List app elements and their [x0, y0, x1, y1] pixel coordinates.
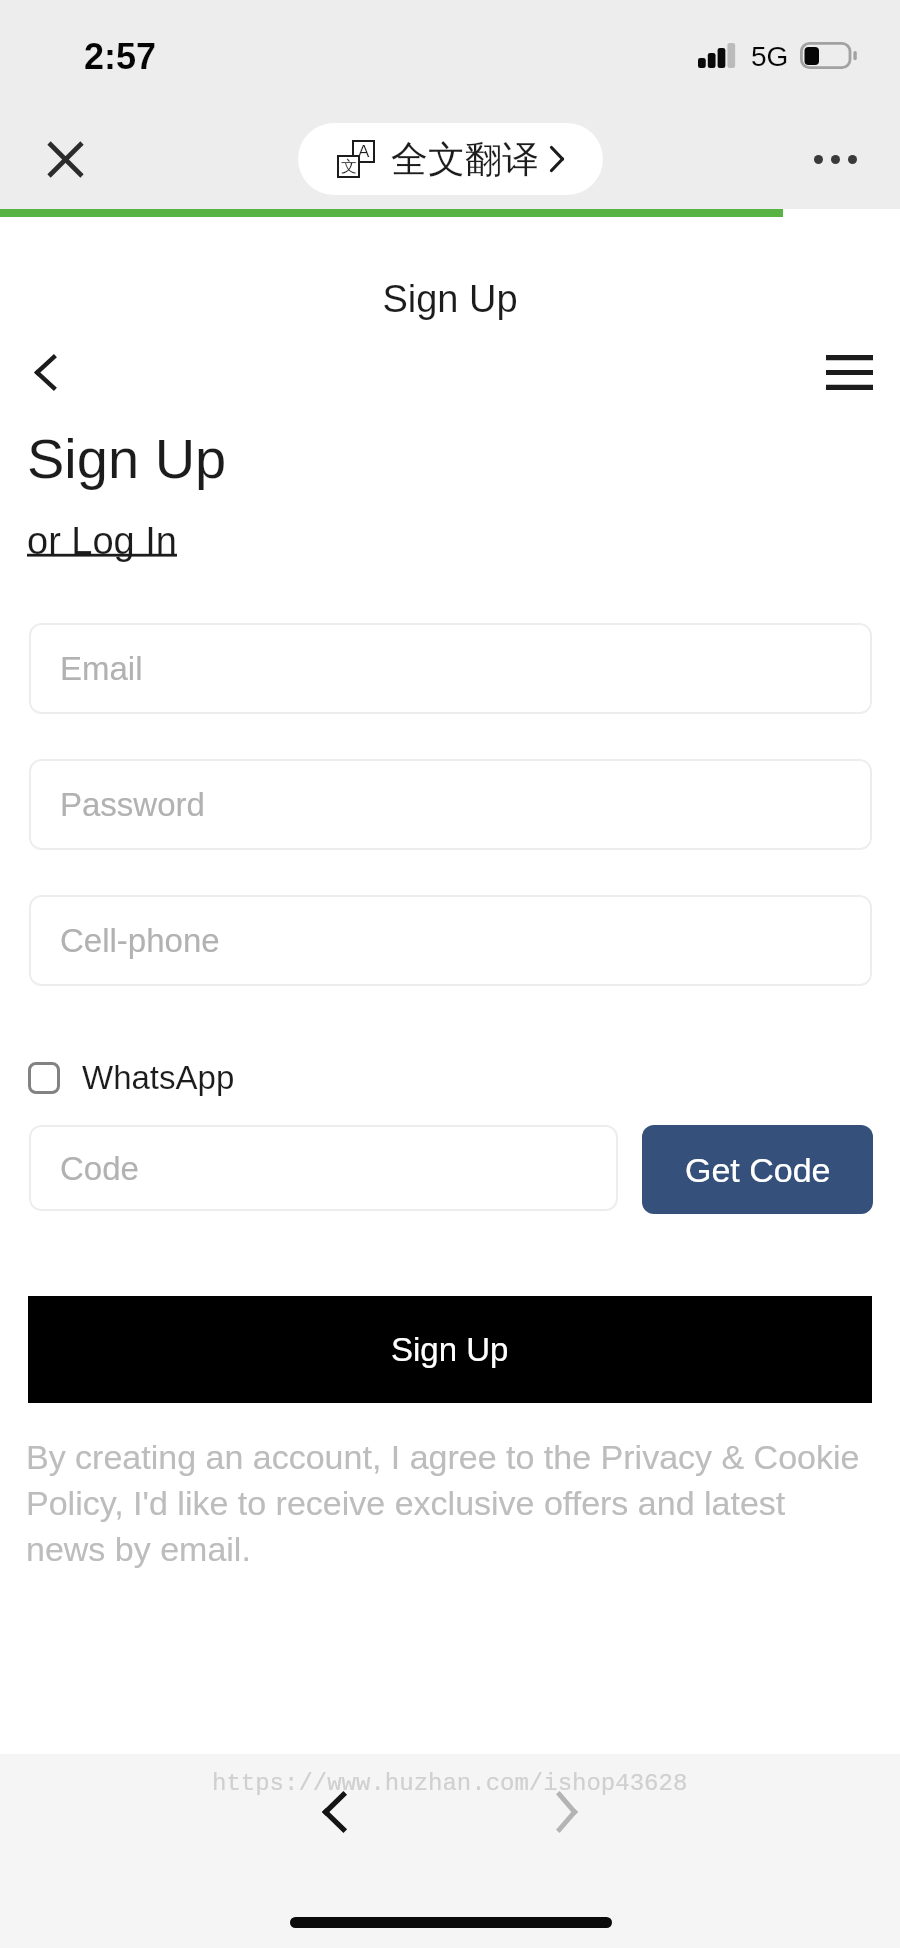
button[interactable]: Email: [29, 623, 872, 714]
button[interactable]: Code: [29, 1125, 618, 1211]
staticText: WhatsApp: [82, 1059, 235, 1096]
staticText: Email: [60, 650, 143, 687]
staticText: A: [358, 142, 370, 161]
button[interactable]: Go back: [298, 1776, 370, 1848]
staticText: Cell-phone: [60, 922, 220, 959]
staticText: Sign Up: [0, 278, 900, 320]
staticText: Code: [60, 1150, 139, 1187]
staticText: 5G: [751, 41, 789, 72]
button[interactable]: Cell-phone: [29, 895, 872, 986]
button[interactable]: Sign Up: [28, 1296, 872, 1403]
staticText: https://www.huzhan.com/ishop43628: [212, 1770, 688, 1797]
button[interactable]: Translate whole page: [298, 123, 603, 195]
staticText: or Log In: [27, 520, 177, 562]
button[interactable]: Password: [29, 759, 872, 850]
button[interactable]: Close: [30, 124, 100, 194]
staticText: 文: [341, 157, 357, 177]
button[interactable]: Go forward: [531, 1776, 603, 1848]
staticText: Sign Up: [391, 1331, 509, 1368]
staticText: Sign Up: [27, 427, 227, 490]
button[interactable]: Menu: [814, 355, 884, 395]
button[interactable]: Back: [17, 344, 73, 400]
staticText: 2:57: [84, 36, 157, 76]
button[interactable]: WhatsApp: [16, 1049, 251, 1106]
staticText: Password: [60, 786, 205, 823]
button[interactable]: or Log In: [19, 512, 191, 570]
staticText: 全文翻译: [391, 136, 539, 183]
staticText: Get Code: [685, 1151, 831, 1189]
button[interactable]: More options: [800, 124, 870, 194]
staticText: By creating an account, I agree to the P…: [26, 1438, 872, 1568]
button[interactable]: Get Code: [642, 1125, 873, 1214]
